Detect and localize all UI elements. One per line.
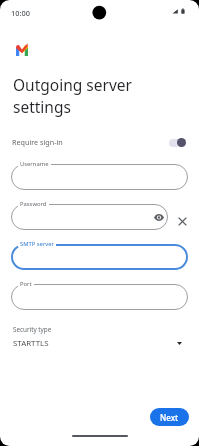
button[interactable]: Clear password [174,213,190,229]
button[interactable]: Password [11,204,168,230]
staticText: STARTTLS [13,338,49,349]
button[interactable]: Require sign-in [0,131,199,153]
staticText: SMTP server [20,240,54,247]
button[interactable]: Username [11,164,188,190]
staticText: Require sign-in [12,137,63,147]
button[interactable]: Security type dropdown [172,336,186,350]
staticText: Port [20,280,32,287]
button[interactable]: Next [150,408,189,426]
button[interactable]: Port [11,284,188,310]
staticText: Next [160,412,179,423]
button[interactable]: Show password [151,209,167,225]
button[interactable]: SMTP server [11,244,188,270]
staticText: 10:00 [11,8,30,18]
staticText: Username [20,160,49,167]
staticText: Password [20,200,47,207]
staticText: Outgoing server settings [13,74,132,117]
staticText: Security type [13,325,52,334]
